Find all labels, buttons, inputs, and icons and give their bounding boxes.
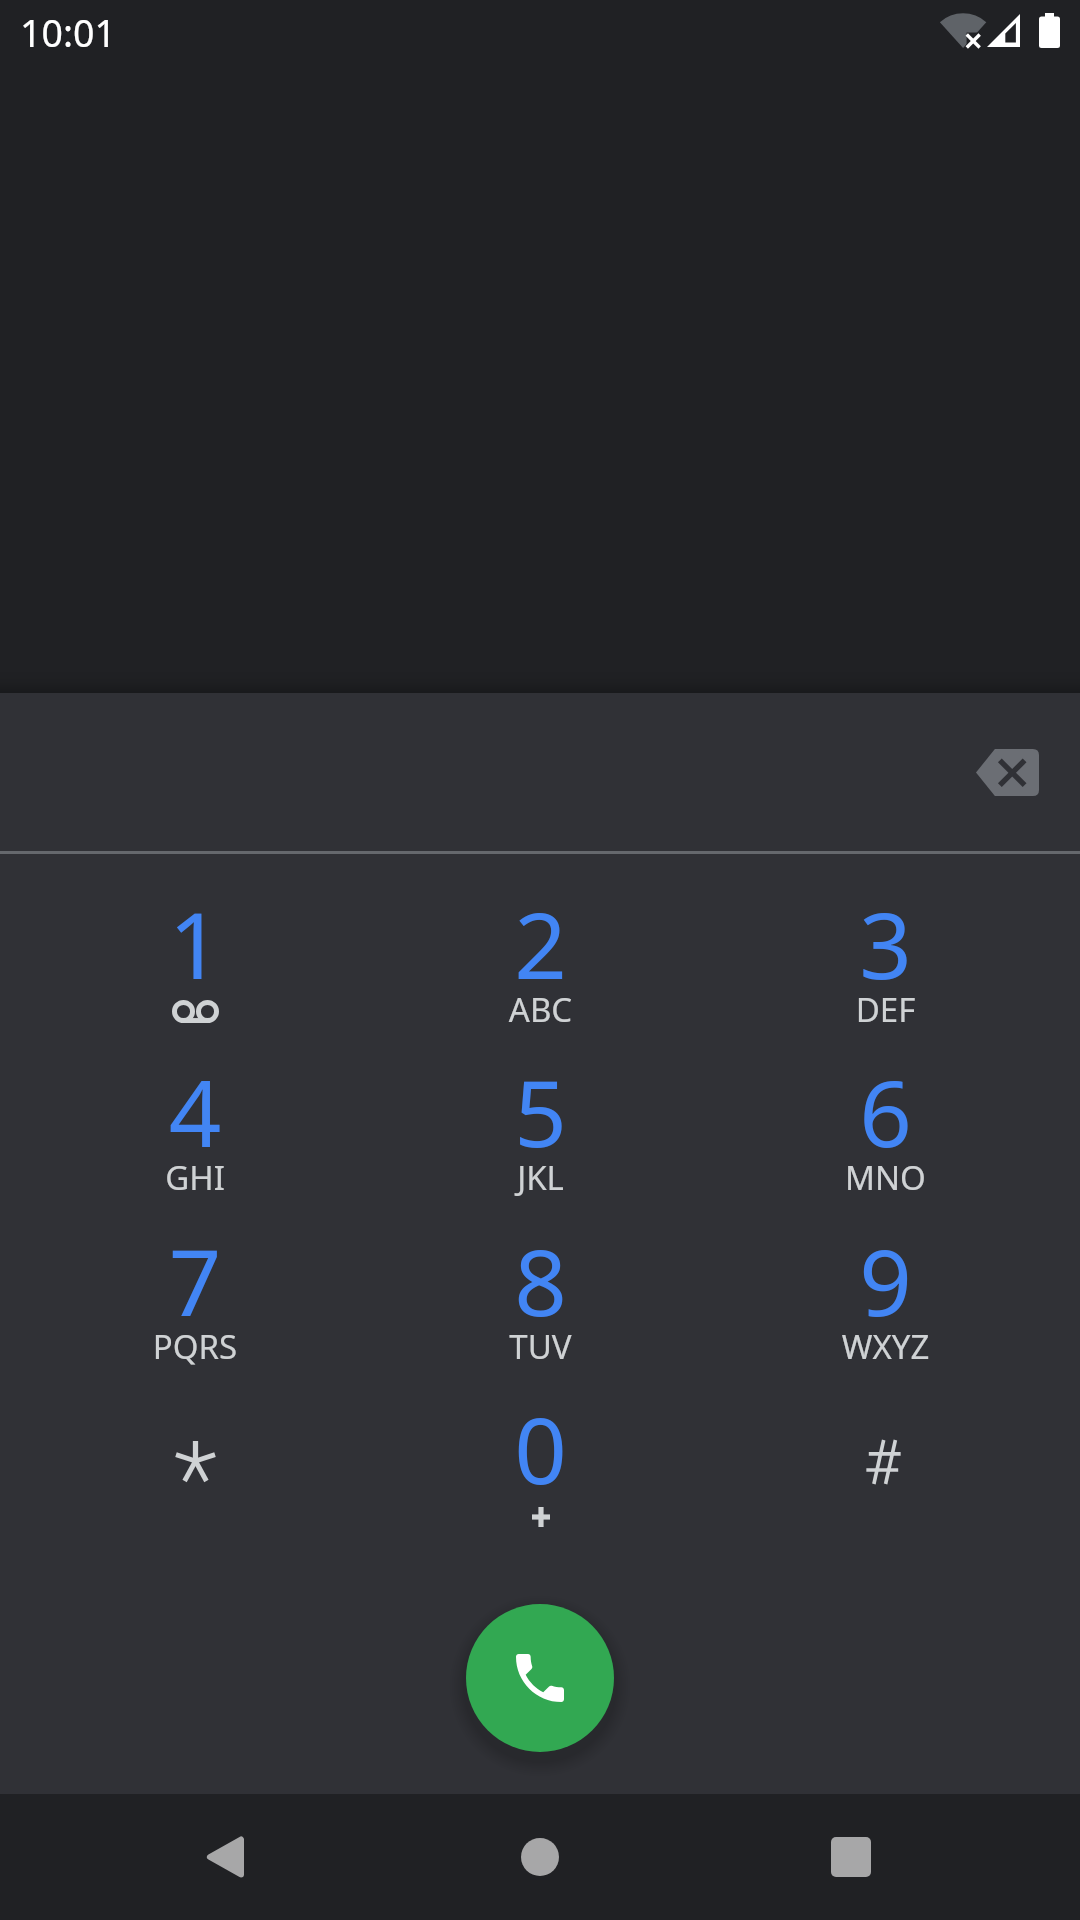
button[interactable]: Dial 0 <box>368 1398 713 1566</box>
staticText: 7 <box>22 1218 368 1343</box>
staticText: DEF <box>713 987 1058 1032</box>
staticText: PQRS <box>22 1324 368 1369</box>
staticText: 10:01 <box>20 7 116 58</box>
button[interactable]: Dial 8 <box>368 1230 713 1398</box>
button[interactable]: Dial 5 <box>368 1061 713 1229</box>
button[interactable]: Star <box>22 1398 368 1566</box>
staticText: WXYZ <box>713 1324 1058 1369</box>
button[interactable]: Recent apps <box>791 1797 911 1917</box>
staticText: JKL <box>368 1155 713 1200</box>
button[interactable]: Pound <box>713 1398 1058 1566</box>
staticText: 9 <box>713 1218 1058 1343</box>
button[interactable]: Call <box>466 1604 614 1752</box>
button[interactable]: Dial 7 <box>22 1230 368 1398</box>
button[interactable]: Dial 3 <box>713 893 1058 1061</box>
staticText: 1 <box>22 881 368 1006</box>
button[interactable]: Dial 2 <box>368 893 713 1061</box>
button[interactable]: Dial 1 <box>22 893 368 1061</box>
staticText: 2 <box>368 881 713 1006</box>
staticText: 3 <box>713 881 1058 1006</box>
button[interactable]: Dial 9 <box>713 1230 1058 1398</box>
staticText: 5 <box>368 1049 713 1174</box>
button[interactable]: Home <box>480 1797 600 1917</box>
staticText: ABC <box>368 987 713 1032</box>
staticText: 4 <box>22 1049 368 1174</box>
staticText: 8 <box>368 1218 713 1343</box>
staticText: GHI <box>22 1155 368 1200</box>
staticText: 6 <box>713 1049 1058 1174</box>
button[interactable]: Dial 6 <box>713 1061 1058 1229</box>
button[interactable]: Dial 4 <box>22 1061 368 1229</box>
button[interactable]: Backspace <box>955 722 1059 822</box>
staticText: TUV <box>368 1324 713 1369</box>
staticText: 0 <box>368 1386 713 1511</box>
button[interactable]: Back <box>165 1797 285 1917</box>
staticText: MNO <box>713 1155 1058 1200</box>
